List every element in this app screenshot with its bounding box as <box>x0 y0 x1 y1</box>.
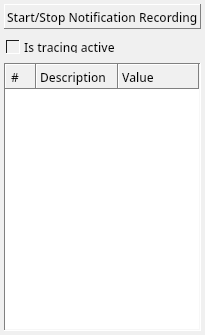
button[interactable]: Start/Stop Notification Recording <box>4 4 201 29</box>
staticText: Value <box>122 69 154 85</box>
staticText: Start/Stop Notification Recording <box>7 9 198 25</box>
staticText: # <box>11 69 19 85</box>
other: Is tracing active check box <box>6 40 20 54</box>
button[interactable]: # <box>5 64 36 89</box>
staticText: Description <box>40 69 106 85</box>
button[interactable]: Is tracing active check box <box>6 40 115 54</box>
staticText: Is tracing active <box>24 39 115 53</box>
button[interactable]: Value <box>118 64 199 89</box>
button[interactable]: Description <box>36 64 118 89</box>
